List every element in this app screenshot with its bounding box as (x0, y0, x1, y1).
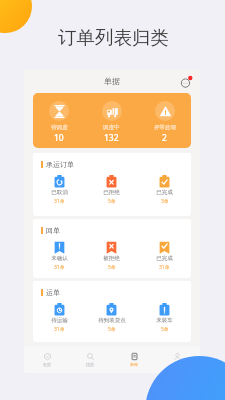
staticText: 未装车 (156, 317, 173, 324)
staticText: 2 (162, 132, 167, 144)
staticText: 我的 (173, 362, 181, 367)
staticText: 已取消 (51, 189, 68, 196)
staticText: 5单 (108, 264, 116, 271)
staticText: 单据 (130, 362, 138, 367)
staticText: 3单 (161, 198, 169, 205)
button[interactable]: Messages (180, 75, 193, 88)
button[interactable]: 已完成 (138, 175, 191, 205)
button[interactable]: 单据 (114, 353, 154, 367)
staticText: 未确认 (51, 255, 68, 262)
staticText: 31单 (159, 264, 170, 271)
button[interactable]: 已拒绝 (85, 175, 138, 205)
button[interactable]: 待调度 (33, 93, 85, 148)
staticText: 被拒绝 (103, 255, 120, 262)
button[interactable]: 被拒绝 (85, 241, 138, 271)
button[interactable]: 异常处理 (138, 93, 191, 148)
staticText: 5单 (161, 326, 169, 333)
button[interactable]: 发货 (27, 353, 67, 367)
staticText: 异常处理 (154, 124, 176, 131)
staticText: 31单 (54, 264, 65, 271)
button[interactable]: 已取消 (33, 175, 85, 205)
staticText: 单据 (104, 76, 120, 86)
staticText: 31单 (54, 326, 65, 333)
staticText: 找货 (86, 362, 94, 367)
staticText: 发货 (43, 362, 51, 367)
button[interactable]: 未确认 (33, 241, 85, 271)
staticText: 回单 (46, 226, 60, 235)
staticText: 待调度 (51, 124, 68, 131)
button[interactable]: 待运输 (33, 303, 85, 333)
staticText: 承运订单 (46, 160, 74, 169)
staticText: 待到装货点 (98, 317, 126, 324)
staticText: 5单 (108, 326, 116, 333)
staticText: 已完成 (156, 189, 173, 196)
staticText: 10 (54, 132, 64, 144)
staticText: 运单 (46, 288, 60, 297)
button[interactable]: 已完成 (138, 241, 191, 271)
staticText: 待运输 (51, 317, 68, 324)
staticText: 5单 (108, 198, 116, 205)
button[interactable]: 我的 (157, 353, 197, 367)
button[interactable]: 找货 (70, 353, 110, 367)
button[interactable]: 待到装货点 (85, 303, 138, 333)
button[interactable]: 调度中 (85, 93, 138, 148)
staticText: 132 (104, 132, 119, 144)
staticText: 已拒绝 (103, 189, 120, 196)
staticText: 订单列表归类 (58, 26, 169, 49)
staticText: 已完成 (156, 255, 173, 262)
button[interactable]: 未装车 (138, 303, 191, 333)
staticText: 调度中 (103, 124, 120, 131)
staticText: 31单 (54, 198, 65, 205)
